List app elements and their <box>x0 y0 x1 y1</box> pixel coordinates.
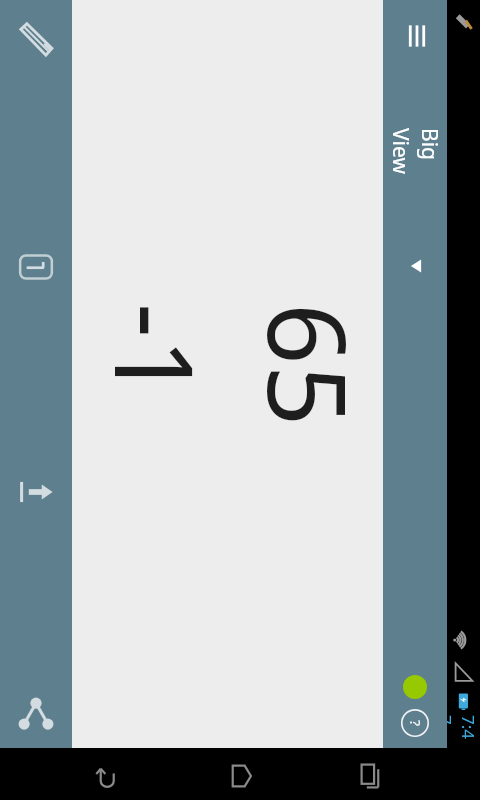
button[interactable]: Edit <box>10 14 62 66</box>
button[interactable]: Menu <box>395 14 439 58</box>
staticText: Big View <box>386 128 444 192</box>
button[interactable]: Tab <box>10 466 62 518</box>
staticText: 65.9667 <box>233 303 383 445</box>
button[interactable]: Home <box>220 756 260 796</box>
button[interactable]: Status <box>403 675 427 699</box>
button[interactable]: Help <box>399 707 431 739</box>
button[interactable]: Back <box>88 756 128 796</box>
button[interactable]: Recent apps <box>352 756 392 796</box>
button[interactable]: Return key <box>12 243 60 291</box>
button[interactable]: Branch <box>10 688 62 740</box>
button[interactable]: Show more <box>398 248 434 284</box>
staticText: ? <box>406 720 425 727</box>
staticText: 7:47 <box>447 715 480 748</box>
staticText: -18.5333 <box>80 303 230 445</box>
